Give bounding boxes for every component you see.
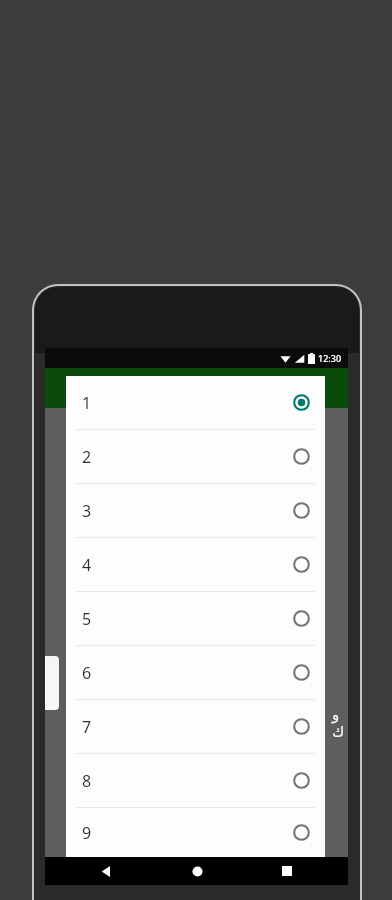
button[interactable]: Recent apps <box>257 857 317 885</box>
staticText: 12:30 <box>318 352 342 364</box>
staticText: 2 <box>82 446 92 468</box>
staticText: 9 <box>82 822 92 844</box>
other: Option <box>293 664 310 681</box>
button[interactable]: 2 <box>66 430 325 483</box>
button[interactable]: 5 <box>66 592 325 645</box>
staticText: 8 <box>82 770 92 792</box>
staticText: 6 <box>82 662 92 684</box>
other: Option <box>293 448 310 465</box>
staticText: 1 <box>82 392 92 414</box>
button[interactable]: 3 <box>66 484 325 537</box>
other: Option <box>293 718 310 735</box>
other: Option <box>293 502 310 519</box>
other: Option <box>293 556 310 573</box>
other: Option <box>293 610 310 627</box>
button[interactable]: 6 <box>66 646 325 699</box>
button[interactable]: 1 <box>66 376 325 429</box>
button[interactable]: 7 <box>66 700 325 753</box>
staticText: 3 <box>82 500 92 522</box>
button[interactable]: 9 <box>66 808 325 857</box>
other: Option <box>293 824 310 841</box>
button[interactable]: 4 <box>66 538 325 591</box>
staticText: 4 <box>82 554 92 576</box>
other: Option <box>293 772 310 789</box>
button[interactable]: Back <box>76 857 136 885</box>
button[interactable]: Home <box>167 857 227 885</box>
staticText: 7 <box>82 716 92 738</box>
other: Selected option <box>293 394 310 411</box>
staticText: 5 <box>82 608 92 630</box>
staticText: و ك <box>332 706 345 740</box>
button[interactable]: 8 <box>66 754 325 807</box>
